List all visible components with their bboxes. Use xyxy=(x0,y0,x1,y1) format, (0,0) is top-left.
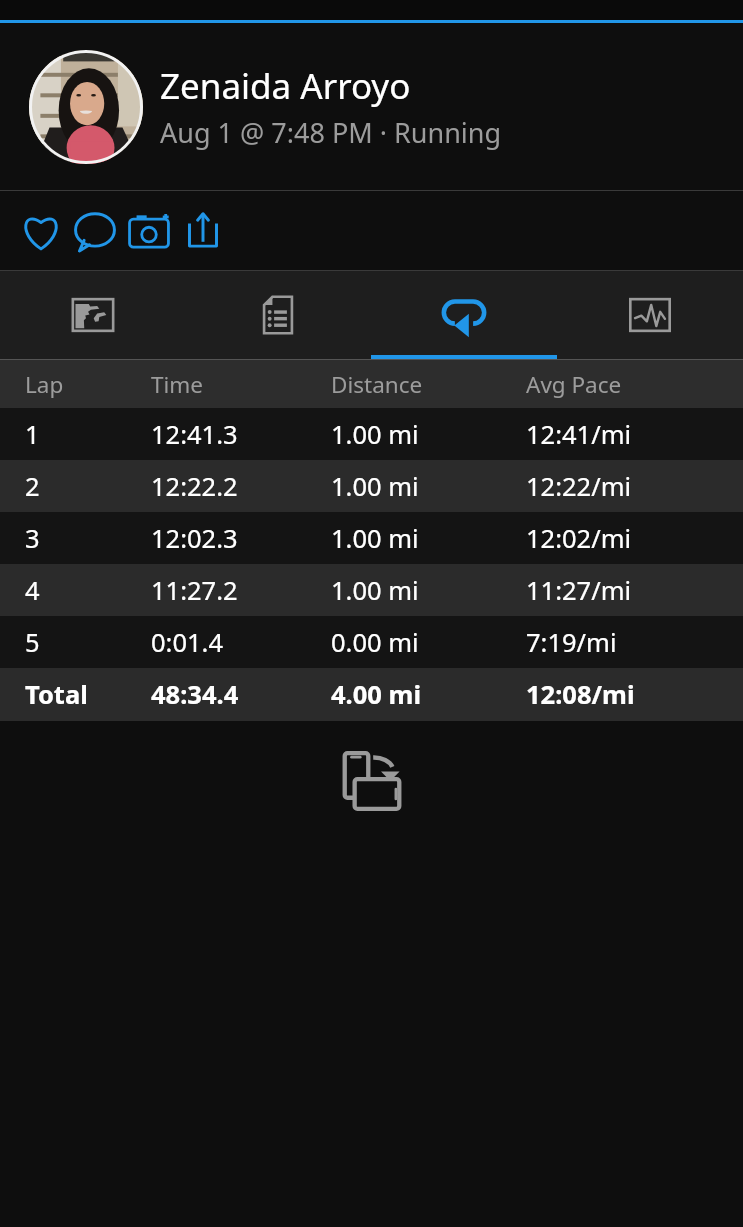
staticText: Total xyxy=(25,677,88,712)
staticText: Aug 1 @ 7:48 PM · Running xyxy=(160,114,502,151)
staticText: Lap xyxy=(25,369,64,400)
staticText: Avg Pace xyxy=(526,369,622,400)
staticText: 4.00 mi xyxy=(331,677,422,712)
staticText: 12:22.2 xyxy=(151,469,238,504)
staticText: 1.00 mi xyxy=(331,417,419,452)
staticText: 12:41.3 xyxy=(151,417,238,452)
staticText: 12:22/mi xyxy=(526,469,632,504)
staticText: 12:08/mi xyxy=(526,677,635,712)
staticText: 1.00 mi xyxy=(331,469,419,504)
staticText: 12:41/mi xyxy=(526,417,632,452)
staticText: 1.00 mi xyxy=(331,521,419,556)
staticText: 0:01.4 xyxy=(151,625,224,660)
staticText: Zenaida Arroyo xyxy=(160,62,411,110)
staticText: 4 xyxy=(25,573,40,608)
button[interactable]: Details xyxy=(185,271,371,359)
button[interactable]: Like xyxy=(14,204,68,258)
staticText: 12:02/mi xyxy=(526,521,632,556)
button[interactable]: Add photo xyxy=(122,204,176,258)
staticText: 12:02.3 xyxy=(151,521,238,556)
staticText: 0.00 mi xyxy=(331,625,419,660)
staticText: 2 xyxy=(25,469,40,504)
staticText: 1.00 mi xyxy=(331,573,419,608)
staticText: 11:27/mi xyxy=(526,573,632,608)
button[interactable]: Splits xyxy=(371,271,557,359)
button[interactable]: Charts xyxy=(557,271,743,359)
staticText: 11:27.2 xyxy=(151,573,238,608)
staticText: 7:19/mi xyxy=(526,625,617,660)
button[interactable]: Map xyxy=(0,271,185,359)
staticText: 48:34.4 xyxy=(151,677,239,712)
staticText: Time xyxy=(151,369,204,400)
button[interactable]: Share xyxy=(176,204,230,258)
staticText: 1 xyxy=(25,417,40,452)
staticText: 3 xyxy=(25,521,40,556)
staticText: Distance xyxy=(331,369,423,400)
button[interactable]: Comment xyxy=(68,204,122,258)
staticText: 5 xyxy=(25,625,40,660)
